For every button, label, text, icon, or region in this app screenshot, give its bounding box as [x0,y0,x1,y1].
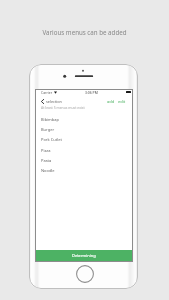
button[interactable]: Burger [36,124,132,134]
staticText: Pizza [41,148,51,153]
staticText: Various menus can be added [42,28,127,36]
button[interactable]: selection [41,99,62,104]
button[interactable]: Home [76,265,94,283]
staticText: Pasta [41,158,52,163]
staticText: Burger [41,127,55,132]
button[interactable]: Pizza [36,145,132,155]
button[interactable]: Noodle [36,165,132,175]
button[interactable]: add [107,99,115,104]
staticText: Noodle [41,168,55,173]
button[interactable]: Pasta [36,155,132,165]
staticText: Carrier [41,90,53,94]
staticText: At least 5 menus must exist [41,105,85,109]
button[interactable]: Bibimbap [36,114,132,124]
staticText: selection [46,99,62,104]
button[interactable]: edit [118,99,126,104]
staticText: Pork Cutlet [41,137,62,142]
button[interactable]: Pork Cutlet [36,134,132,144]
staticText: 3:06 PM [85,90,98,94]
staticText: Bibimbap [41,117,60,122]
button[interactable]: Determining [36,250,132,261]
staticText: Determining [72,253,96,258]
